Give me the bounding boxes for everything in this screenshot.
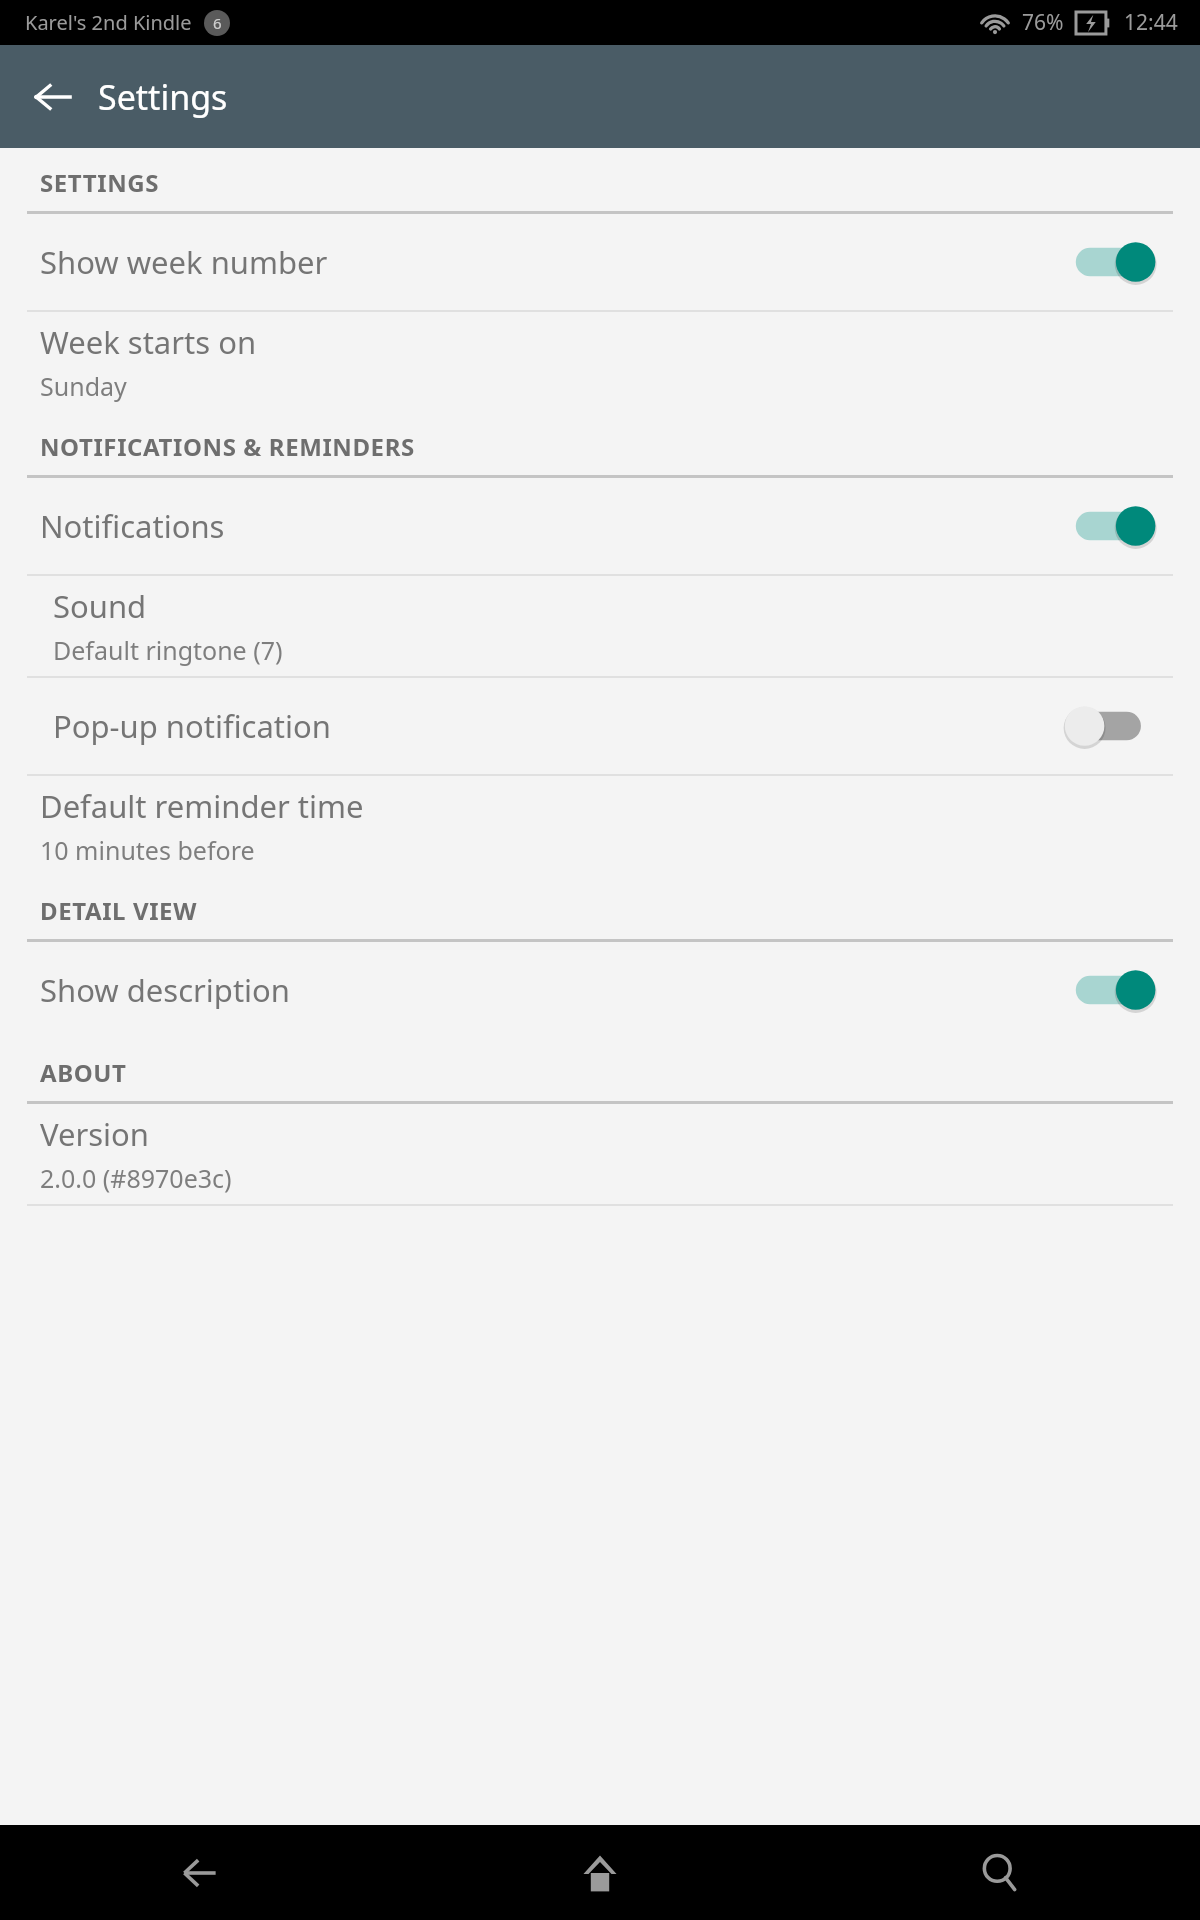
button[interactable]: Week starts on (0, 312, 1200, 412)
staticText: Default ringtone (7) (53, 633, 283, 667)
staticText: Notifications (40, 505, 225, 547)
button[interactable]: Pop-up notification (0, 678, 1200, 774)
button[interactable]: Notifications (0, 478, 1200, 574)
staticText: 12:44 (1124, 8, 1178, 37)
staticText: 6 (213, 13, 222, 33)
staticText: Week starts on (40, 321, 257, 363)
staticText: 76% (1022, 8, 1064, 37)
staticText: Pop-up notification (53, 705, 331, 747)
button[interactable]: Show description (0, 942, 1200, 1038)
staticText: 10 minutes before (40, 833, 255, 867)
button[interactable]: Home (400, 1825, 800, 1920)
staticText: SETTINGS (40, 166, 160, 199)
staticText: Sunday (40, 369, 127, 403)
button[interactable]: Default reminder time (0, 776, 1200, 876)
button[interactable]: Back (0, 1825, 400, 1920)
button[interactable]: Sound (0, 576, 1200, 676)
staticText: DETAIL VIEW (40, 894, 197, 927)
staticText: Karel's 2nd Kindle (25, 9, 192, 36)
staticText: Version (40, 1113, 150, 1155)
staticText: Default reminder time (40, 785, 364, 827)
staticText: ABOUT (40, 1056, 127, 1089)
button[interactable]: Show week number (0, 214, 1200, 310)
staticText: Sound (53, 585, 147, 627)
button[interactable]: Search (800, 1825, 1200, 1920)
staticText: NOTIFICATIONS & REMINDERS (40, 430, 415, 463)
button[interactable]: Back (18, 62, 88, 132)
staticText: 2.0.0 (#8970e3c) (40, 1161, 232, 1195)
staticText: Settings (98, 74, 228, 120)
button[interactable]: Version (0, 1104, 1200, 1204)
staticText: Show description (40, 969, 290, 1011)
staticText: Show week number (40, 241, 328, 283)
